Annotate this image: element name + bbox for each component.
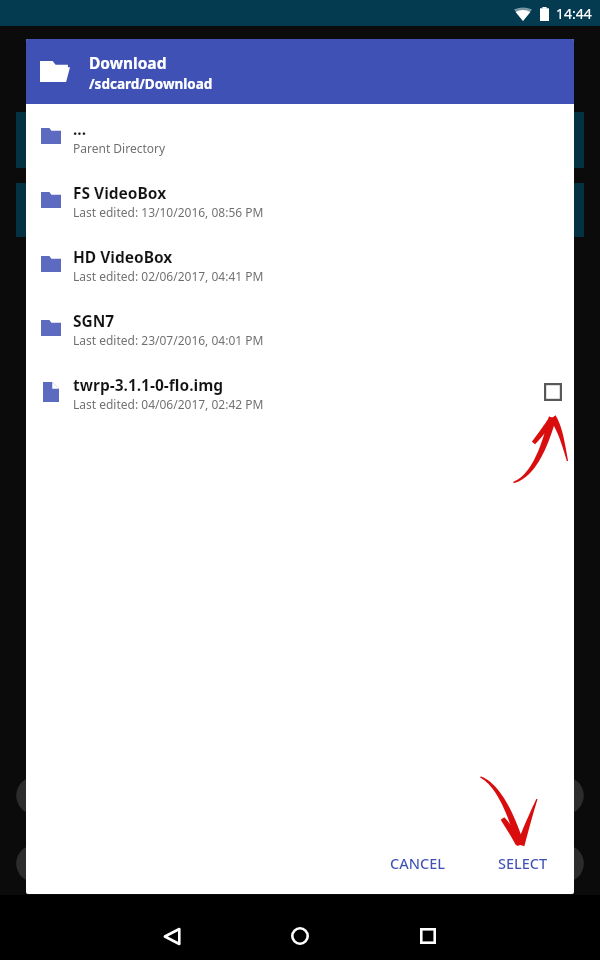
staticText: Last edited: 23/07/2016, 04:01 PM <box>73 332 264 348</box>
staticText: twrp-3.1.1-0-flo.img <box>73 374 224 395</box>
button[interactable]: Download <box>26 39 574 104</box>
staticText: 14:44 <box>556 4 592 23</box>
staticText: SGN7 <box>73 310 115 331</box>
staticText: FS VideoBox <box>73 182 167 203</box>
button[interactable]: Back <box>148 912 196 960</box>
button[interactable]: twrp-3.1.1-0-flo.img <box>26 360 574 424</box>
staticText: Last edited: 13/10/2016, 08:56 PM <box>73 204 264 220</box>
button[interactable]: SGN7 <box>26 296 574 360</box>
staticText: /sdcard/Download <box>89 75 213 93</box>
button[interactable]: Home <box>276 912 324 960</box>
button[interactable]: SELECT <box>484 843 562 883</box>
staticText: SELECT <box>498 853 548 873</box>
button[interactable]: CANCEL <box>376 843 459 883</box>
staticText: CANCEL <box>390 853 445 873</box>
staticText: HD VideoBox <box>73 246 173 267</box>
staticText: Parent Directory <box>73 140 166 156</box>
button[interactable]: FS VideoBox <box>26 168 574 232</box>
button[interactable]: Select file <box>535 374 571 410</box>
staticText: Last edited: 04/06/2017, 02:42 PM <box>73 396 264 412</box>
button[interactable]: ... <box>26 104 574 168</box>
staticText: Last edited: 02/06/2017, 04:41 PM <box>73 268 264 284</box>
button[interactable]: HD VideoBox <box>26 232 574 296</box>
staticText: ... <box>73 118 87 139</box>
button[interactable]: Recents <box>404 912 452 960</box>
staticText: Download <box>89 52 167 73</box>
